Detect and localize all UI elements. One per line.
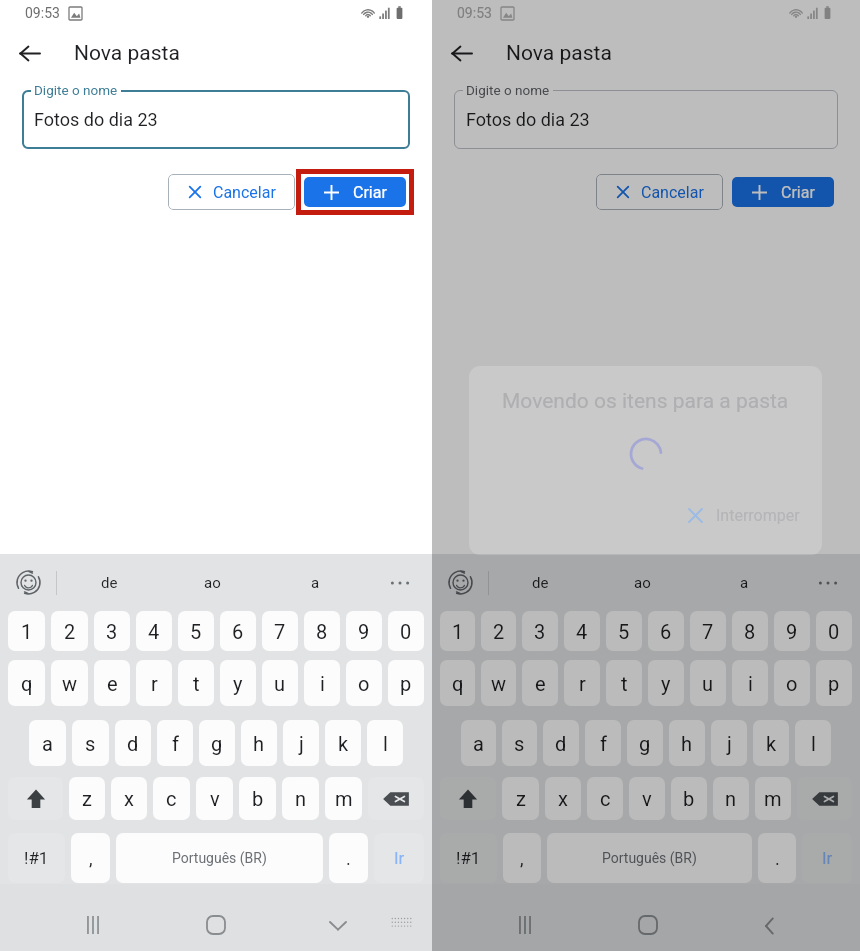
button[interactable]: 9 (774, 611, 810, 651)
button[interactable]: Back (440, 33, 482, 74)
button[interactable]: , (503, 833, 541, 883)
button[interactable]: z (69, 777, 105, 820)
button[interactable]: Shift (8, 777, 63, 820)
button[interactable]: Criar (304, 177, 406, 207)
button[interactable]: o (346, 660, 382, 706)
button[interactable]: Emoji (432, 554, 488, 611)
button[interactable]: 9 (346, 611, 382, 651)
button[interactable]: t (178, 660, 214, 706)
button[interactable]: ao (161, 554, 264, 611)
button[interactable]: w (51, 660, 88, 706)
button[interactable]: Hide keyboard (307, 916, 368, 951)
button[interactable]: x (111, 777, 147, 820)
button[interactable]: x (545, 777, 581, 820)
button[interactable]: y (648, 660, 684, 706)
button[interactable]: 3 (94, 611, 130, 651)
button[interactable]: p (388, 660, 424, 706)
button[interactable]: 2 (481, 611, 516, 651)
button[interactable]: d (115, 720, 151, 766)
button[interactable]: v (629, 777, 665, 820)
button[interactable]: 0 (816, 611, 852, 651)
button[interactable]: w (481, 660, 516, 706)
button[interactable]: Home (617, 916, 678, 951)
button[interactable]: p (816, 660, 852, 706)
button[interactable]: h (669, 720, 705, 766)
button[interactable]: c (587, 777, 623, 820)
button[interactable]: k (753, 720, 789, 766)
button[interactable]: 7 (690, 611, 726, 651)
button[interactable]: i (304, 660, 340, 706)
button[interactable]: t (606, 660, 642, 706)
button[interactable]: Emoji (0, 554, 56, 611)
button[interactable]: 6 (220, 611, 256, 651)
button[interactable]: f (585, 720, 621, 766)
button[interactable]: 8 (304, 611, 340, 651)
button[interactable]: r (136, 660, 172, 706)
button[interactable]: 1 (440, 611, 475, 651)
button[interactable]: Ir (802, 833, 852, 883)
button[interactable]: Recent apps (62, 916, 123, 951)
button[interactable]: . (758, 833, 796, 883)
button[interactable]: Português (BR) (547, 833, 752, 883)
button[interactable]: Ir (374, 833, 424, 883)
button[interactable]: f (157, 720, 193, 766)
button[interactable]: g (199, 720, 235, 766)
button[interactable]: Back (739, 916, 800, 951)
button[interactable]: z (502, 777, 539, 820)
button[interactable]: 2 (51, 611, 88, 651)
button[interactable]: Back (8, 33, 50, 74)
button[interactable]: 4 (136, 611, 172, 651)
button[interactable]: 7 (262, 611, 298, 651)
button[interactable]: de (489, 554, 591, 611)
button[interactable]: e (94, 660, 130, 706)
button[interactable]: Symbols (8, 833, 65, 883)
button[interactable]: i (732, 660, 768, 706)
button[interactable]: o (774, 660, 810, 706)
button[interactable]: u (690, 660, 726, 706)
button[interactable]: s (502, 720, 537, 766)
button[interactable]: a (461, 720, 496, 766)
button[interactable]: ao (591, 554, 693, 611)
button[interactable]: e (522, 660, 558, 706)
button[interactable]: q (8, 660, 45, 706)
button[interactable]: b (671, 777, 707, 820)
button[interactable]: Cancelar (596, 174, 723, 210)
button[interactable]: a (29, 720, 66, 766)
button[interactable]: , (71, 833, 110, 883)
button[interactable]: k (325, 720, 361, 766)
button[interactable]: More options (367, 554, 432, 611)
button[interactable]: a (693, 554, 795, 611)
button[interactable]: m (325, 777, 362, 820)
button[interactable]: j (283, 720, 319, 766)
button[interactable]: q (440, 660, 475, 706)
button[interactable]: 5 (178, 611, 214, 651)
button[interactable]: Cancelar (168, 174, 295, 210)
button[interactable]: a (264, 554, 367, 611)
button[interactable]: 4 (564, 611, 600, 651)
button[interactable]: h (241, 720, 277, 766)
button[interactable]: Português (BR) (116, 833, 323, 883)
button[interactable]: 1 (8, 611, 45, 651)
button[interactable]: 0 (388, 611, 424, 651)
button[interactable]: Home (185, 916, 246, 951)
button[interactable]: b (239, 777, 276, 820)
button[interactable]: 5 (606, 611, 642, 651)
button[interactable]: de (57, 554, 161, 611)
button[interactable]: j (711, 720, 747, 766)
button[interactable]: g (627, 720, 663, 766)
button[interactable]: 6 (648, 611, 684, 651)
button[interactable]: m (755, 777, 791, 820)
button[interactable]: n (713, 777, 749, 820)
button[interactable]: Recent apps (494, 916, 555, 951)
button[interactable]: 8 (732, 611, 768, 651)
button[interactable]: Symbols (440, 833, 497, 883)
button[interactable]: s (72, 720, 109, 766)
button[interactable]: y (220, 660, 256, 706)
button[interactable]: r (564, 660, 600, 706)
button[interactable]: Criar (732, 177, 834, 207)
button[interactable]: v (196, 777, 233, 820)
button[interactable]: Backspace (368, 777, 424, 820)
button[interactable]: c (153, 777, 190, 820)
button[interactable]: u (262, 660, 298, 706)
button[interactable]: Backspace (797, 777, 852, 820)
